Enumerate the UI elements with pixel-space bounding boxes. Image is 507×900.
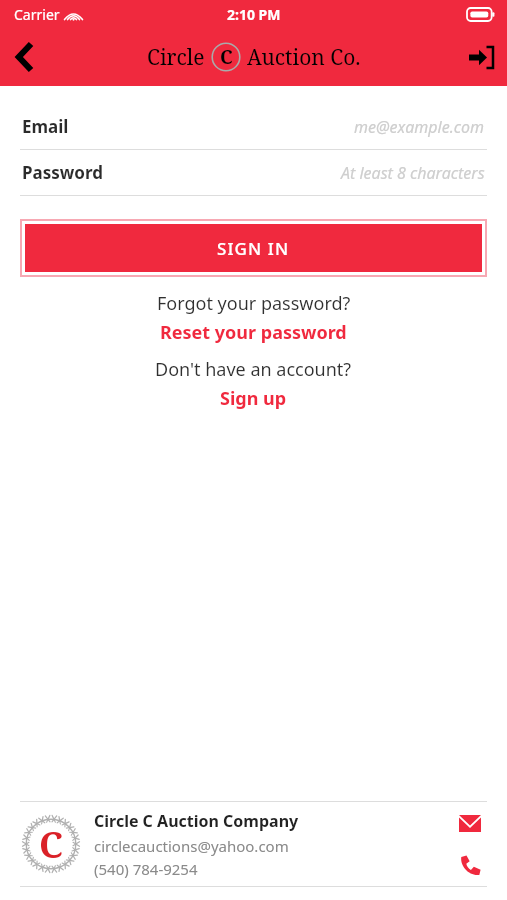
button[interactable]: Sign in: [455, 31, 507, 83]
staticText: Auction Co.: [247, 43, 361, 72]
staticText: Password: [22, 161, 103, 184]
staticText: Carrier: [14, 5, 60, 24]
staticText: C: [220, 44, 233, 70]
button[interactable]: Email: [453, 806, 487, 840]
staticText: me@example.com: [354, 116, 485, 138]
staticText: C: [39, 820, 64, 869]
staticText: 2:10 PM: [227, 5, 281, 24]
staticText: Sign up: [220, 386, 287, 411]
button[interactable]: Password: [0, 150, 507, 196]
staticText: At least 8 characters: [341, 162, 485, 184]
button[interactable]: Email: [0, 104, 507, 150]
staticText: circlecauctions@yahoo.com: [94, 836, 289, 856]
staticText: Email: [22, 115, 69, 138]
staticText: (540) 784-9254: [94, 859, 198, 879]
staticText: Don't have an account?: [155, 357, 352, 382]
button[interactable]: Reset your password: [154, 319, 353, 346]
staticText: SIGN IN: [217, 237, 290, 260]
staticText: Circle: [147, 43, 205, 72]
button[interactable]: Sign up: [214, 385, 293, 412]
button[interactable]: Call: [453, 848, 487, 882]
button[interactable]: Back: [0, 31, 52, 83]
staticText: Forgot your password?: [157, 291, 351, 316]
button[interactable]: SIGN IN: [25, 224, 482, 272]
staticText: Reset your password: [160, 320, 347, 345]
staticText: Circle C Auction Company: [94, 810, 299, 832]
